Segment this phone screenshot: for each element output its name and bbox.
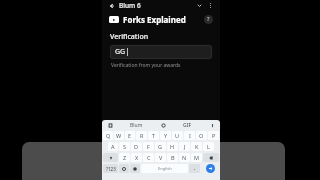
button[interactable]: E: [125, 131, 135, 140]
staticText: Verify: [153, 163, 170, 171]
button[interactable]: Expand: [195, 1, 204, 10]
button[interactable]: Back: [107, 1, 116, 10]
staticText: I: [189, 132, 191, 139]
staticText: G: [158, 143, 163, 150]
button[interactable]: P: [208, 131, 219, 140]
button[interactable]: T: [148, 131, 159, 140]
staticText: D: [134, 143, 139, 150]
button[interactable]: Forks Explained: [109, 11, 213, 27]
button[interactable]: Blum: [130, 122, 143, 129]
staticText: P: [212, 132, 216, 139]
staticText: Forks Explained: [123, 14, 186, 25]
button[interactable]: M: [191, 153, 202, 162]
staticText: M: [194, 154, 199, 161]
button[interactable]: O: [196, 131, 207, 140]
button[interactable]: Q: [103, 131, 113, 140]
staticText: A: [111, 143, 115, 150]
button[interactable]: S: [119, 142, 130, 151]
staticText: Y: [164, 132, 168, 139]
staticText: ?123: [106, 166, 116, 172]
button[interactable]: A: [108, 142, 118, 151]
staticText: F: [147, 143, 150, 150]
staticText: E: [128, 132, 132, 139]
button[interactable]: V: [155, 153, 166, 162]
button[interactable]: Y: [160, 131, 171, 140]
staticText: GG: [115, 47, 126, 57]
button[interactable]: Voice input: [208, 121, 216, 129]
button[interactable]: Help: [204, 15, 213, 24]
button[interactable]: Clipboard: [106, 121, 114, 129]
staticText: H: [170, 143, 175, 150]
button[interactable]: Language: [119, 164, 129, 173]
button[interactable]: D: [131, 142, 142, 151]
staticText: Verification from your awards: [111, 62, 181, 69]
button[interactable]: R: [136, 131, 147, 140]
button[interactable]: GIF: [183, 122, 192, 129]
staticText: N: [182, 154, 187, 161]
staticText: K: [195, 143, 199, 150]
button[interactable]: U: [172, 131, 183, 140]
button[interactable]: Space: [141, 164, 188, 173]
staticText: Q: [106, 132, 111, 139]
button[interactable]: H: [167, 142, 178, 151]
staticText: O: [199, 132, 204, 139]
staticText: W: [116, 132, 122, 139]
button[interactable]: Z: [119, 153, 130, 162]
staticText: S: [123, 143, 127, 150]
staticText: X: [135, 154, 139, 161]
staticText: .: [194, 165, 196, 172]
button[interactable]: ?123: [103, 164, 118, 173]
button[interactable]: More options: [206, 1, 215, 10]
button[interactable]: G: [155, 142, 166, 151]
staticText: J: [184, 143, 186, 150]
button[interactable]: Backspace: [203, 153, 219, 162]
button[interactable]: Stickers: [159, 121, 167, 129]
staticText: Verification: [110, 32, 149, 42]
staticText: R: [140, 132, 144, 139]
button[interactable]: Enter: [201, 164, 219, 173]
staticText: ?: [207, 16, 210, 23]
button[interactable]: W: [114, 131, 124, 140]
staticText: T: [152, 132, 156, 139]
button[interactable]: J: [179, 142, 190, 151]
button[interactable]: B: [167, 153, 178, 162]
staticText: C: [147, 154, 151, 161]
staticText: B: [171, 154, 175, 161]
button[interactable]: Emoji: [130, 164, 140, 173]
button[interactable]: L: [203, 142, 214, 151]
button[interactable]: X: [131, 153, 142, 162]
staticText: L: [207, 143, 210, 150]
button[interactable]: GG: [110, 45, 212, 59]
button[interactable]: .: [189, 164, 200, 173]
staticText: English: [158, 166, 172, 171]
button[interactable]: C: [143, 153, 154, 162]
button[interactable]: I: [184, 131, 195, 140]
button[interactable]: Verify: [110, 160, 212, 173]
staticText: V: [159, 154, 163, 161]
staticText: Z: [123, 154, 127, 161]
button[interactable]: F: [143, 142, 154, 151]
button[interactable]: Shift: [103, 153, 118, 162]
button[interactable]: K: [191, 142, 202, 151]
staticText: U: [175, 132, 180, 139]
button[interactable]: N: [179, 153, 190, 162]
staticText: Blum 6: [119, 1, 141, 10]
